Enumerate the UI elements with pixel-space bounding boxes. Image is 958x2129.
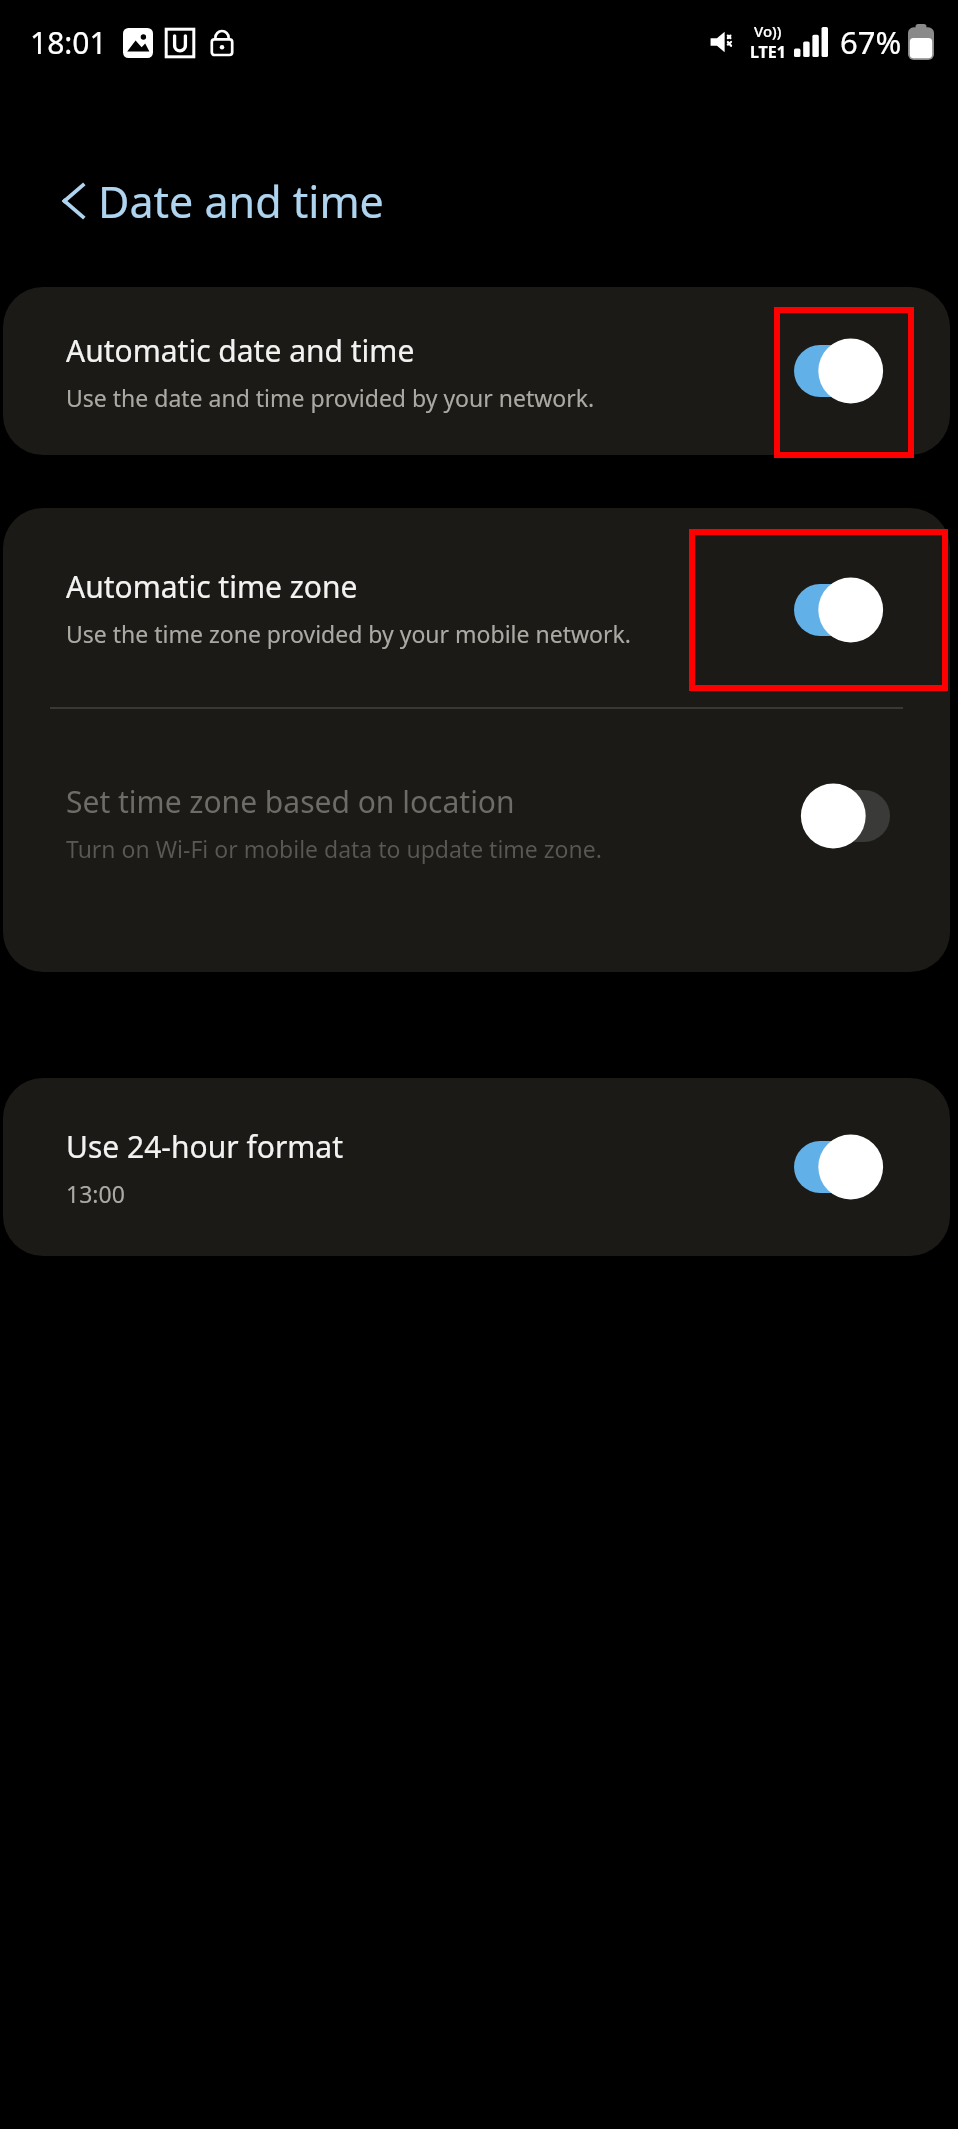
staticText: 13:00 (66, 1178, 125, 1209)
button[interactable]: Toggle on (794, 335, 890, 407)
button[interactable]: Use 24-hour format (3, 1078, 950, 1256)
staticText: Vo)) (754, 21, 782, 41)
staticText: Use the date and time provided by your n… (66, 382, 595, 413)
button[interactable]: Back (44, 170, 106, 232)
button[interactable]: Toggle on (794, 1131, 890, 1203)
button[interactable]: Toggle off (794, 780, 890, 852)
staticText: Turn on Wi-Fi or mobile data to update t… (66, 833, 602, 864)
button[interactable]: Automatic date and time (3, 287, 950, 455)
button[interactable]: Set time zone based on location (3, 709, 950, 972)
staticText: 18:01 (30, 22, 107, 63)
staticText: Set time zone based on location (66, 781, 515, 822)
button[interactable]: Toggle on (794, 574, 890, 646)
staticText: Date and time (98, 172, 384, 231)
staticText: 67% (840, 21, 902, 63)
staticText: Automatic time zone (66, 566, 358, 607)
staticText: Use the time zone provided by your mobil… (66, 618, 631, 649)
button[interactable]: Automatic time zone (3, 508, 950, 707)
staticText: LTE1 (750, 41, 786, 63)
staticText: Use 24-hour format (66, 1126, 343, 1167)
staticText: Automatic date and time (66, 330, 415, 371)
